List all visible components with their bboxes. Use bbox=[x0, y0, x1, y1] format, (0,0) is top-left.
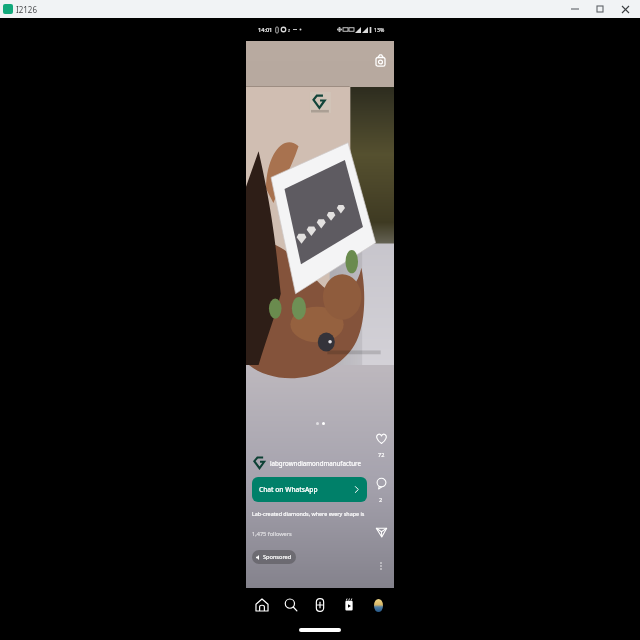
button[interactable]: Chat on WhatsApp bbox=[252, 477, 367, 502]
button[interactable]: Create bbox=[307, 592, 333, 618]
staticText: 2 bbox=[379, 496, 383, 503]
button[interactable]: Maximize bbox=[593, 2, 607, 16]
staticText: I2126 bbox=[16, 4, 38, 15]
button[interactable]: Camera bbox=[371, 51, 389, 69]
button[interactable]: Profile bbox=[365, 592, 391, 618]
staticText: z bbox=[288, 27, 291, 33]
button[interactable]: Close bbox=[618, 2, 632, 16]
button[interactable]: More options bbox=[372, 557, 390, 575]
button[interactable]: Comment bbox=[370, 472, 392, 494]
staticText: Lab-created diamonds, where every shape … bbox=[252, 510, 367, 517]
button[interactable]: labgrowndiamondmanufacture bbox=[252, 455, 361, 470]
button[interactable]: Sponsored bbox=[252, 550, 296, 564]
button[interactable]: Home bbox=[249, 592, 275, 618]
staticText: Chat on WhatsApp bbox=[259, 485, 318, 494]
button[interactable]: Search bbox=[278, 592, 304, 618]
button[interactable]: Minimize bbox=[568, 2, 582, 16]
button[interactable]: Like bbox=[370, 427, 392, 449]
staticText: 14:01 bbox=[258, 26, 273, 34]
button[interactable]: Reels bbox=[336, 592, 362, 618]
staticText: 72 bbox=[378, 451, 385, 458]
staticText: 1,475 followers bbox=[252, 530, 292, 538]
staticText: labgrowndiamondmanufacture bbox=[270, 459, 361, 467]
staticText: Sponsored bbox=[263, 553, 292, 561]
button[interactable]: Share bbox=[370, 520, 392, 542]
staticText: 13% bbox=[374, 26, 385, 33]
